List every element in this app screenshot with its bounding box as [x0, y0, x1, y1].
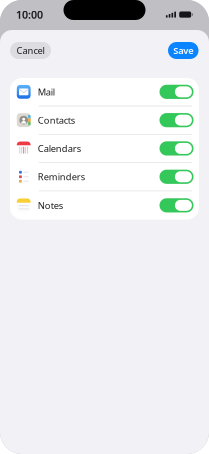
button[interactable]: Cancel — [10, 42, 51, 59]
button[interactable]: Reminders — [10, 163, 199, 191]
staticText: Mail — [38, 86, 55, 98]
staticText: Contacts — [38, 114, 75, 126]
button[interactable]: Contacts — [10, 106, 199, 135]
staticText: Notes — [38, 199, 63, 212]
staticText: Reminders — [38, 171, 85, 183]
staticText: Save — [173, 44, 193, 57]
button[interactable]: Save — [168, 42, 198, 59]
button[interactable]: Mail — [10, 78, 199, 106]
staticText: Cancel — [16, 44, 44, 57]
button[interactable]: Notes — [10, 191, 199, 219]
button[interactable]: Calendars — [10, 135, 199, 163]
staticText: 10:00 — [16, 7, 43, 22]
staticText: Calendars — [38, 142, 81, 155]
